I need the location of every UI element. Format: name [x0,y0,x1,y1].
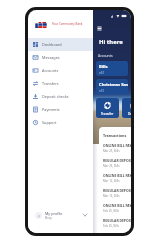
staticText: Mar 12, Bills [103,179,120,183]
staticText: Deposit checks [42,94,69,99]
button[interactable]: Dashboard [28,38,93,51]
staticText: Christmas Savings [99,82,128,88]
staticText: My profile [45,211,63,216]
staticText: Payments [42,107,60,112]
staticText: ONLINE BILL PAYMENT [103,203,131,208]
staticText: Support [42,120,57,125]
button[interactable]: Open navigation menu [97,26,102,31]
staticText: x51 [99,89,105,93]
staticText: Mar 12, Bills [103,194,120,198]
button[interactable]: REGULAR DEPOSIT [99,158,131,173]
staticText: Mar 25, Bills [103,149,120,153]
staticText: Elroy [45,216,52,220]
staticText: REGULAR DEPOSIT [103,188,131,193]
staticText: REGULAR DEPOSIT [103,218,131,223]
button[interactable]: Transfers [28,77,93,90]
button[interactable]: Messages [28,51,93,64]
staticText: Bills [99,64,108,70]
staticText: Your Community Bank [52,22,83,26]
staticText: Accounts [98,53,113,58]
button[interactable]: deposit [122,98,131,118]
button[interactable]: My profile [28,207,93,223]
button[interactable]: Accounts [28,64,93,77]
staticText: x61 [99,71,105,75]
staticText: Transactions [103,133,127,138]
button[interactable]: ONLINE BILL PAYMENT [99,173,131,188]
staticText: Transfer [101,112,114,116]
button[interactable]: Christmas Savings [96,79,128,94]
button[interactable]: REGULAR DEPOSIT [99,218,131,233]
button[interactable]: Bills [96,61,128,76]
staticText: Hi there [99,38,123,46]
staticText: Feb 25, Bills [103,224,119,228]
staticText: Mar 25, Bills [103,164,120,168]
button[interactable]: Support [28,116,93,129]
button[interactable]: transfer [96,98,119,118]
staticText: Accounts [42,68,59,73]
staticText: Feb 25, Bills [103,209,119,213]
staticText: ONLINE BILL PAYMENT [103,173,131,178]
button[interactable]: Deposit checks [28,90,93,103]
staticText: ONLINE BILL PAYMENT [103,143,131,148]
button[interactable]: REGULAR DEPOSIT [99,188,131,203]
button[interactable]: ONLINE BILL PAYMENT [99,143,131,158]
staticText: Messages [42,55,60,60]
button[interactable]: Payments [28,103,93,116]
button[interactable]: ONLINE BILL PAYMENT [99,203,131,218]
staticText: Transfers [42,81,59,86]
staticText: Deposit [128,112,131,116]
staticText: REGULAR DEPOSIT [103,158,131,163]
staticText: Dashboard [42,42,62,47]
